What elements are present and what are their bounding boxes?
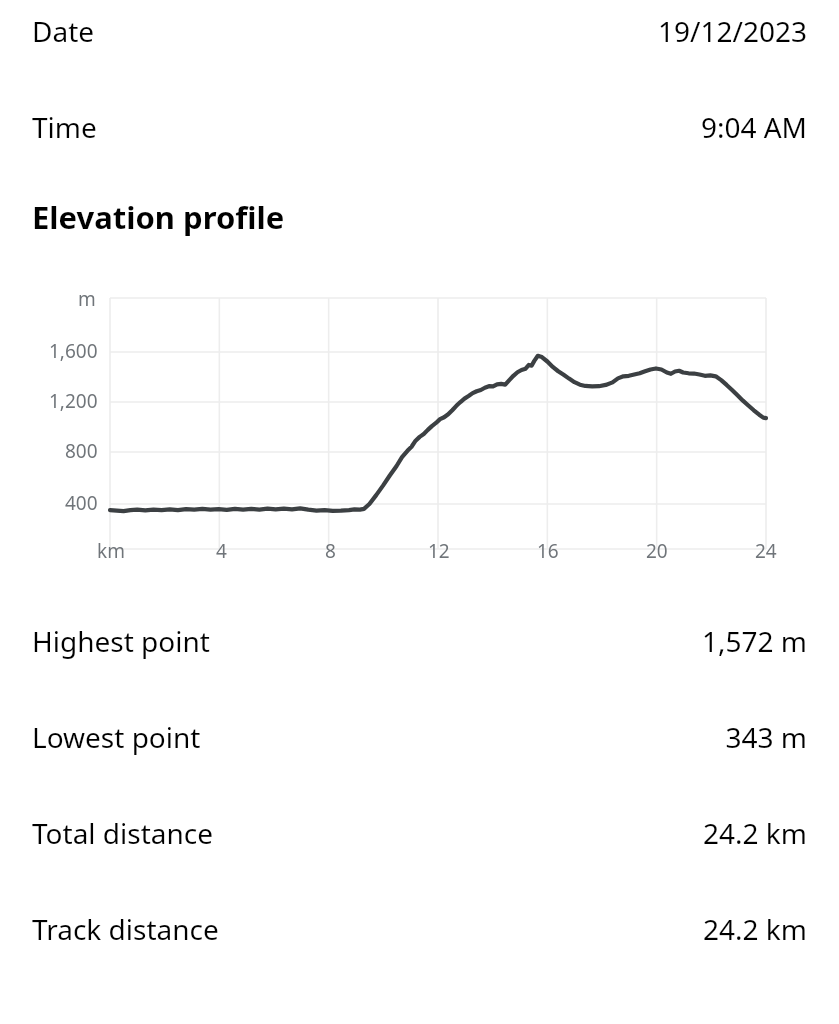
- staticText: 20: [646, 538, 668, 564]
- staticText: 400: [65, 490, 98, 514]
- staticText: Track distance: [32, 910, 219, 948]
- staticText: 8: [325, 538, 336, 564]
- button[interactable]: Date: [0, 12, 839, 50]
- button[interactable]: Track distance: [0, 910, 839, 948]
- staticText: 343 m: [725, 718, 807, 756]
- staticText: 24.2 km: [703, 910, 807, 948]
- staticText: 16: [537, 538, 559, 564]
- staticText: Time: [32, 108, 97, 146]
- staticText: Highest point: [32, 622, 210, 660]
- staticText: Total distance: [32, 814, 214, 852]
- button[interactable]: Highest point: [0, 622, 839, 660]
- staticText: Lowest point: [32, 718, 201, 756]
- staticText: 1,600: [49, 338, 98, 362]
- staticText: 4: [216, 538, 227, 564]
- staticText: Date: [32, 12, 95, 50]
- staticText: 19/12/2023: [658, 12, 807, 50]
- button[interactable]: Time: [0, 108, 839, 146]
- staticText: 800: [65, 438, 98, 462]
- staticText: km: [97, 538, 125, 564]
- button[interactable]: Lowest point: [0, 718, 839, 756]
- staticText: Elevation profile: [32, 196, 285, 238]
- staticText: 1,572 m: [701, 622, 807, 660]
- staticText: 24.2 km: [703, 814, 807, 852]
- staticText: 9:04 AM: [700, 108, 807, 146]
- staticText: 24: [755, 538, 777, 564]
- staticText: m: [78, 286, 96, 312]
- button[interactable]: Total distance: [0, 814, 839, 852]
- staticText: 12: [428, 538, 450, 564]
- staticText: 1,200: [49, 388, 98, 412]
